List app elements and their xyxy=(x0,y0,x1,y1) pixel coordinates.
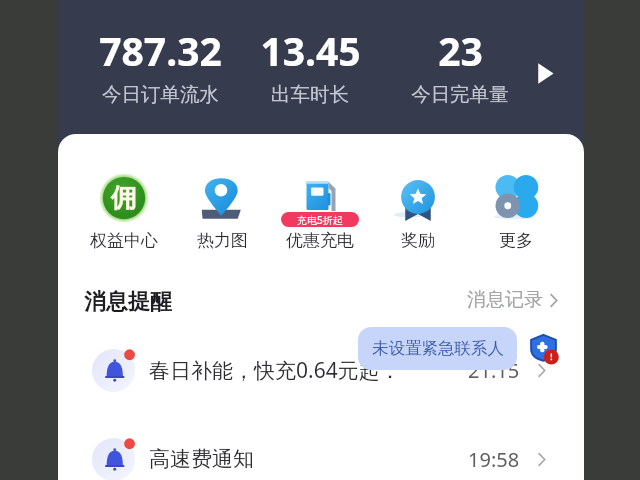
button[interactable]: 23 xyxy=(385,24,535,107)
button[interactable]: Safety xyxy=(530,334,557,361)
button[interactable]: 热力图 xyxy=(173,170,271,252)
button[interactable]: 佣 xyxy=(75,170,173,252)
button[interactable]: 春日补能，快充0.64元起： xyxy=(58,336,584,404)
button[interactable]: 未设置紧急联系人 xyxy=(358,327,517,370)
staticText: 19:58 xyxy=(468,446,520,473)
staticText: 23 xyxy=(438,24,483,77)
staticText: 13.45 xyxy=(260,24,361,77)
staticText: 充电5折起 xyxy=(297,213,343,227)
staticText: 权益中心 xyxy=(90,230,158,251)
button[interactable]: 13.45 xyxy=(235,24,385,107)
button[interactable]: Next xyxy=(522,50,568,96)
staticText: 今日完单量 xyxy=(411,82,509,107)
button[interactable]: 充电5折起 xyxy=(271,170,369,252)
staticText: 出车时长 xyxy=(271,82,349,107)
staticText: 787.32 xyxy=(99,24,222,77)
staticText: 优惠充电 xyxy=(286,230,354,251)
staticText: 高速费通知 xyxy=(149,446,254,472)
staticText: 热力图 xyxy=(197,230,248,251)
button[interactable]: 787.32 xyxy=(85,24,235,107)
staticText: 消息记录 xyxy=(467,288,543,312)
button[interactable]: 奖励 xyxy=(369,170,467,252)
staticText: 未设置紧急联系人 xyxy=(372,338,504,359)
staticText: 更多 xyxy=(499,230,533,251)
staticText: 今日订单流水 xyxy=(102,82,219,107)
staticText: 春日补能，快充0.64元起： xyxy=(149,356,401,385)
button[interactable]: 更多 xyxy=(467,170,565,252)
button[interactable]: 高速费通知 xyxy=(58,425,584,480)
staticText: 佣 xyxy=(111,182,137,215)
button[interactable]: 消息记录 xyxy=(467,288,558,312)
staticText: 奖励 xyxy=(401,230,435,251)
staticText: 21:15 xyxy=(468,357,520,384)
staticText: 消息提醒 xyxy=(84,288,172,312)
